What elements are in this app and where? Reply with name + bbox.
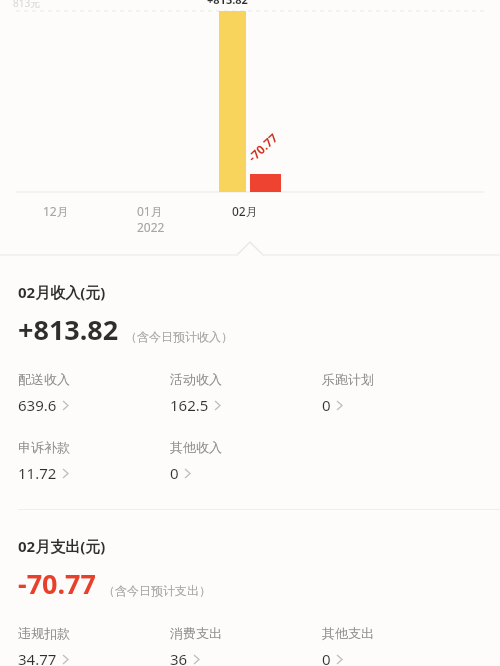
staticText: 02月支出(元) — [18, 536, 106, 556]
staticText: 11.72 — [18, 463, 57, 483]
button[interactable]: 活动收入 — [170, 371, 222, 415]
staticText: 乐跑计划 — [322, 371, 374, 387]
staticText: （含今日预计支出） — [103, 583, 211, 598]
staticText: 813元 — [13, 0, 41, 10]
staticText: 12月 — [43, 203, 69, 219]
staticText: 0 — [322, 395, 331, 415]
button[interactable]: 配送收入 — [18, 371, 70, 415]
button[interactable]: 违规扣款 — [18, 625, 70, 666]
staticText: 01月 — [137, 203, 163, 219]
other: 查看活动收入 详情 — [214, 400, 221, 411]
staticText: -70.77 — [18, 565, 97, 602]
staticText: -70.77 — [244, 129, 281, 165]
staticText: 2022 — [137, 219, 165, 235]
staticText: 活动收入 — [170, 371, 222, 387]
staticText: 其他收入 — [170, 439, 222, 455]
other: 查看其他支出 详情 — [336, 654, 343, 665]
other: 查看消费支出 详情 — [193, 654, 200, 665]
other: 查看申诉补款 详情 — [62, 468, 69, 479]
other: 查看违规扣款 详情 — [62, 654, 69, 665]
staticText: 违规扣款 — [18, 625, 70, 641]
other: 查看其他收入 详情 — [184, 468, 191, 479]
button[interactable]: 申诉补款 — [18, 439, 70, 483]
button[interactable]: 其他收入 — [170, 439, 222, 483]
staticText: 162.5 — [170, 395, 209, 415]
staticText: 639.6 — [18, 395, 57, 415]
staticText: 34.77 — [18, 649, 57, 666]
staticText: 02月 — [232, 203, 258, 219]
staticText: 02月收入(元) — [18, 282, 106, 302]
staticText: +813.82 — [18, 311, 119, 348]
staticText: 配送收入 — [18, 371, 70, 387]
staticText: 0 — [322, 649, 331, 666]
staticText: 其他支出 — [322, 625, 374, 641]
other: 查看配送收入 详情 — [62, 400, 69, 411]
staticText: +813.82 — [207, 0, 248, 7]
staticText: 申诉补款 — [18, 439, 70, 455]
button[interactable]: 其他支出 — [322, 625, 374, 666]
other: 查看乐跑计划 详情 — [336, 400, 343, 411]
button[interactable]: 乐跑计划 — [322, 371, 374, 415]
staticText: 36 — [170, 649, 188, 666]
button[interactable]: 消费支出 — [170, 625, 222, 666]
staticText: 消费支出 — [170, 625, 222, 641]
staticText: 0 — [170, 463, 179, 483]
staticText: （含今日预计收入） — [125, 329, 233, 344]
